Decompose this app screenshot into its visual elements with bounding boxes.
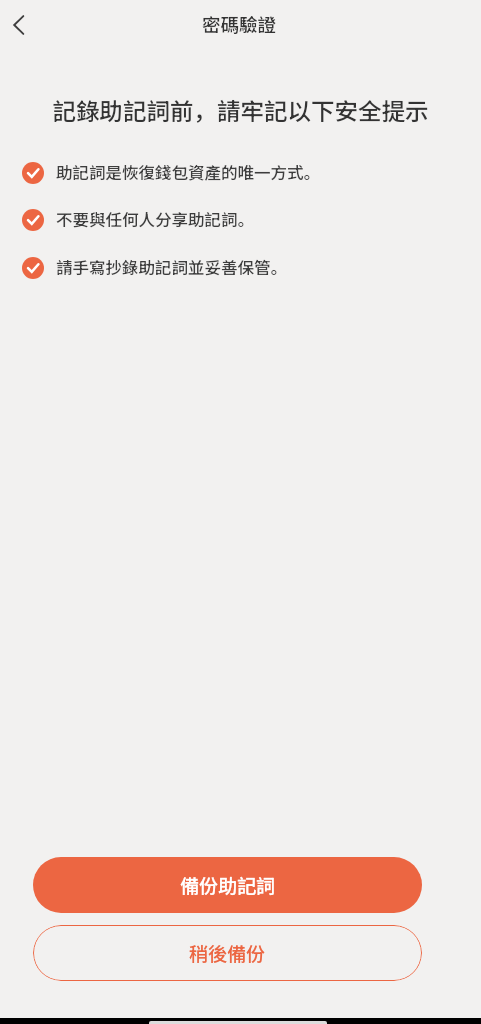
button[interactable]: 稍後備份	[33, 925, 422, 981]
staticText: 不要與任何人分享助記詞。	[56, 207, 254, 231]
staticText: 請手寫抄錄助記詞並妥善保管。	[56, 255, 287, 279]
button[interactable]: Back	[0, 5, 39, 45]
button[interactable]: 請手寫抄錄助記詞並妥善保管。	[0, 250, 481, 286]
staticText: 密碼驗證	[202, 11, 277, 38]
button[interactable]: 不要與任何人分享助記詞。	[0, 202, 481, 238]
staticText: 助記詞是恢復錢包資產的唯一方式。	[56, 160, 320, 184]
button[interactable]: 助記詞是恢復錢包資產的唯一方式。	[0, 155, 481, 191]
staticText: 備份助記詞	[180, 871, 276, 899]
staticText: 記錄助記詞前，請牢記以下安全提示	[0, 93, 481, 127]
staticText: 稍後備份	[189, 939, 266, 967]
button[interactable]: 備份助記詞	[33, 857, 422, 913]
